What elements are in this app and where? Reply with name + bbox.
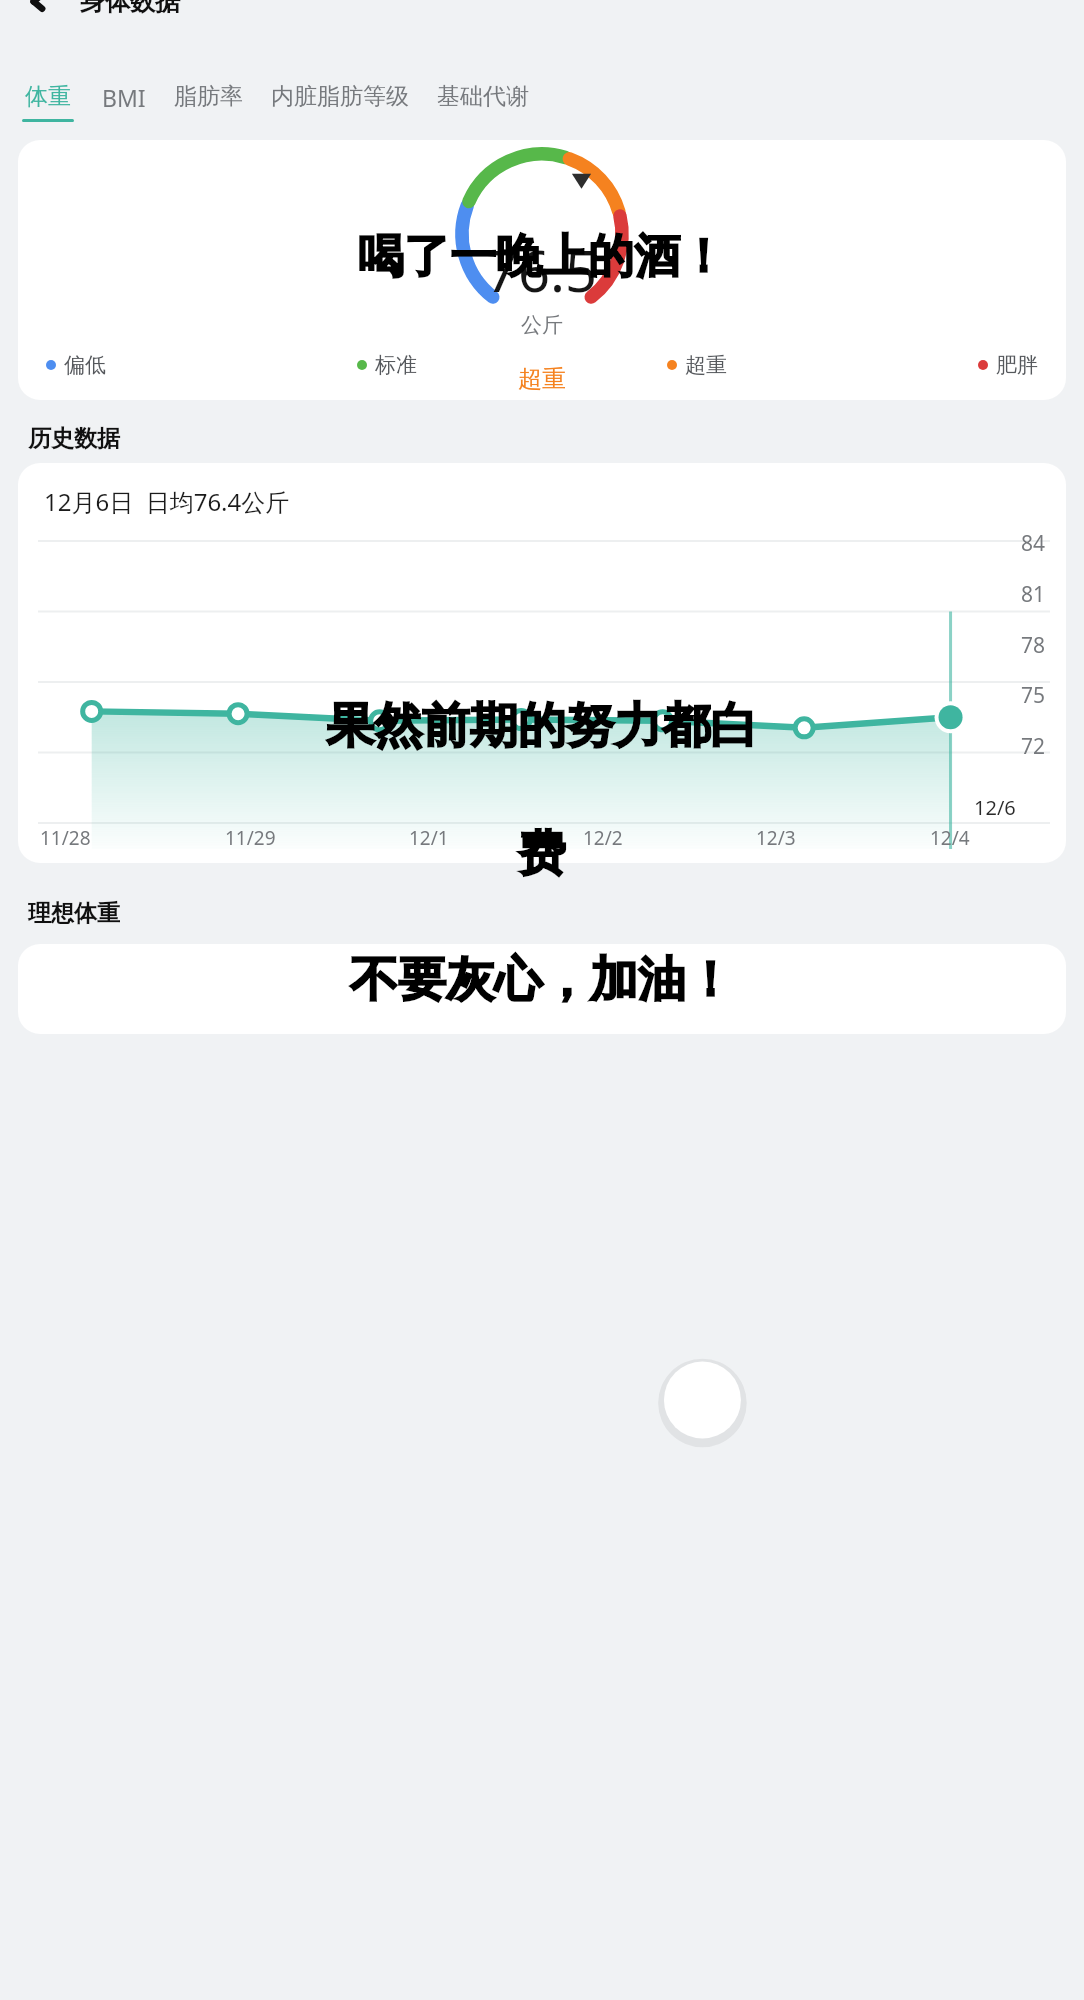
button[interactable]: 偏低 bbox=[46, 352, 106, 378]
staticText: 超重 bbox=[518, 364, 566, 394]
button[interactable]: 肥胖 bbox=[978, 352, 1038, 378]
button[interactable]: 脂肪率 bbox=[174, 82, 243, 119]
staticText: 81 bbox=[1021, 580, 1046, 609]
staticText: 理想体重 bbox=[28, 899, 120, 928]
staticText: 12月6日 日均76.4公斤 bbox=[44, 485, 290, 518]
staticText: 12/2 bbox=[583, 825, 623, 851]
staticText: 基础代谢 bbox=[437, 82, 529, 111]
staticText: 11/28 bbox=[40, 825, 91, 851]
staticText: 76.5 bbox=[486, 232, 598, 308]
staticText: 11/29 bbox=[225, 825, 276, 851]
staticText: 肥胖 bbox=[996, 352, 1038, 378]
button[interactable]: 76.5 bbox=[18, 140, 1066, 400]
staticText: BMI bbox=[102, 82, 146, 113]
staticText: 12/4 bbox=[930, 825, 970, 851]
button[interactable]: 标准 bbox=[357, 352, 417, 378]
staticText: 75 bbox=[1021, 681, 1046, 710]
button[interactable]: 12月6日 日均76.4公斤 bbox=[18, 463, 1066, 863]
staticText: 偏低 bbox=[64, 352, 106, 378]
button[interactable]: 体重 bbox=[22, 82, 74, 122]
staticText: 内脏脂肪等级 bbox=[271, 82, 409, 111]
staticText: 72 bbox=[1021, 732, 1046, 761]
button[interactable] bbox=[18, 944, 1066, 1034]
staticText: 公斤 bbox=[521, 312, 563, 338]
staticText: 喝了一晚上的酒！ bbox=[0, 228, 1084, 286]
button[interactable]: 基础代谢 bbox=[437, 82, 529, 119]
staticText: 脂肪率 bbox=[174, 82, 243, 111]
button[interactable]: 超重 bbox=[667, 352, 727, 378]
staticText: 78 bbox=[1021, 631, 1046, 660]
button[interactable]: BMI bbox=[102, 82, 146, 121]
staticText: 历史数据 bbox=[28, 424, 120, 453]
staticText: 12/1 bbox=[409, 825, 449, 851]
staticText: 12/6 bbox=[974, 794, 1016, 821]
staticText: 费 bbox=[0, 824, 1084, 884]
staticText: 标准 bbox=[375, 352, 417, 378]
staticText: 超重 bbox=[685, 352, 727, 378]
staticText: 身体数据 bbox=[80, 0, 180, 17]
staticText: 84 bbox=[1021, 529, 1046, 558]
staticText: 12/3 bbox=[756, 825, 796, 851]
button[interactable]: Back bbox=[14, 0, 60, 24]
button[interactable]: 内脏脂肪等级 bbox=[271, 82, 409, 119]
staticText: 体重 bbox=[25, 82, 71, 111]
staticText: 果然前期的努力都白 bbox=[0, 696, 1084, 756]
staticText: 不要灰心，加油！ bbox=[0, 950, 1084, 1010]
